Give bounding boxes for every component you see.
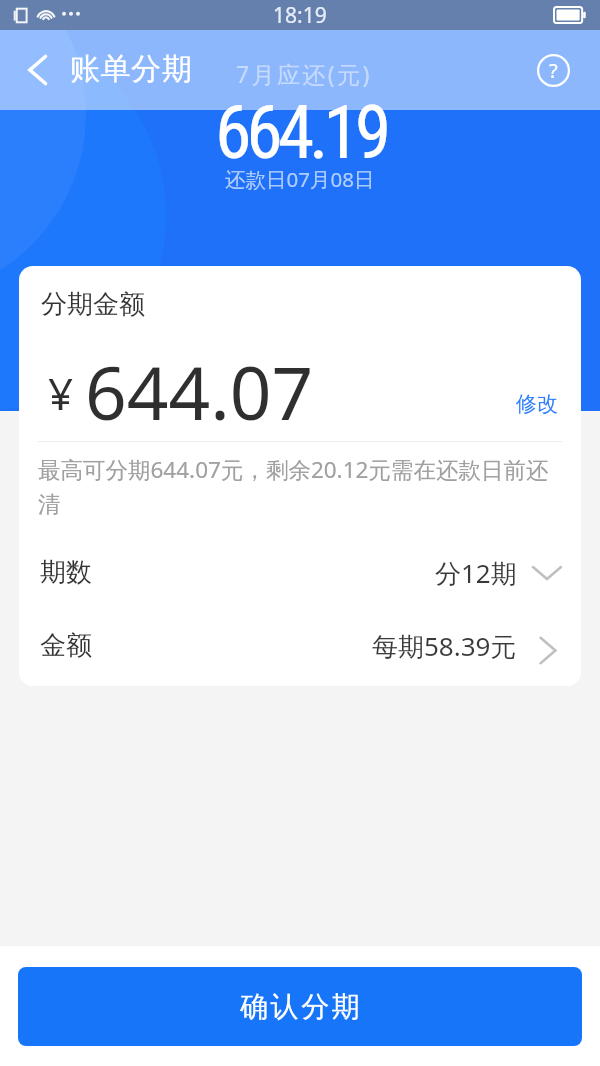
staticText: 确认分期 xyxy=(239,989,361,1024)
staticText: ? xyxy=(549,57,558,84)
staticText: 644.07 xyxy=(85,342,314,441)
staticText: 还款日07月08日 xyxy=(225,165,375,193)
staticText: 账单分期 xyxy=(70,50,193,88)
staticText: 7月应还(元) xyxy=(236,58,372,89)
staticText: 最高可分期644.07元，剩余20.12元需在还款日前还清 xyxy=(38,454,566,519)
button[interactable]: 修改 xyxy=(511,386,563,422)
staticText: 修改 xyxy=(516,391,558,417)
button[interactable]: 确认分期 xyxy=(18,967,582,1046)
button[interactable]: 期数 xyxy=(19,536,581,609)
button[interactable]: Help xyxy=(533,50,574,91)
staticText: ¥ xyxy=(48,363,74,423)
button[interactable]: Back xyxy=(10,42,64,98)
staticText: 分期金额 xyxy=(41,288,145,321)
staticText: 金额 xyxy=(40,629,92,662)
staticText: 分12期 xyxy=(435,555,517,591)
staticText: 664.19 xyxy=(215,89,386,176)
staticText: 18:19 xyxy=(273,1,327,30)
staticText: 每期58.39元 xyxy=(372,628,517,664)
staticText: 期数 xyxy=(40,556,92,589)
button[interactable]: 金额 xyxy=(19,609,581,682)
